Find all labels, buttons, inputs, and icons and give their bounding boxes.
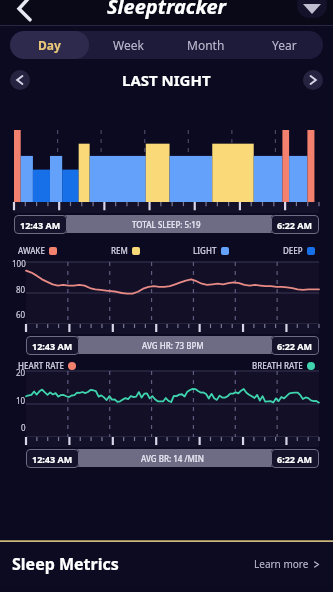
- button[interactable]: Next night: [303, 70, 323, 90]
- staticText: DEEP: [283, 245, 303, 256]
- staticText: BREATH RATE: [252, 360, 303, 371]
- staticText: 12:43 AM: [20, 219, 61, 231]
- staticText: LIGHT: [193, 245, 217, 256]
- staticText: 80: [16, 284, 26, 295]
- staticText: 12:43 AM: [32, 340, 73, 352]
- staticText: Sleeptracker: [107, 0, 227, 19]
- staticText: AWAKE: [18, 245, 45, 256]
- staticText: Year: [272, 37, 297, 53]
- staticText: 60: [16, 309, 26, 320]
- button[interactable]: Year: [245, 31, 323, 59]
- staticText: AVG BR: 14 /MIN: [141, 453, 204, 464]
- staticText: 0: [21, 422, 26, 433]
- staticText: 20: [16, 367, 26, 378]
- staticText: 6:22 AM: [277, 453, 313, 465]
- staticText: 6:22 AM: [277, 340, 313, 352]
- staticText: Learn more: [254, 557, 309, 571]
- staticText: Sleep Metrics: [12, 553, 119, 575]
- staticText: Month: [187, 37, 225, 53]
- button[interactable]: Month: [167, 31, 245, 59]
- button[interactable]: Previous night: [10, 70, 30, 90]
- staticText: 100: [12, 258, 26, 269]
- button[interactable]: Menu: [297, 0, 327, 18]
- staticText: Day: [38, 37, 61, 53]
- button[interactable]: Back: [6, 0, 40, 26]
- staticText: TOTAL SLEEP: 5:19: [132, 219, 201, 230]
- staticText: REM: [111, 245, 128, 256]
- staticText: 12:43 AM: [32, 453, 73, 465]
- staticText: AVG HR: 73 BPM: [142, 340, 204, 351]
- button[interactable]: Day: [10, 31, 89, 59]
- staticText: LAST NIGHT: [122, 70, 211, 90]
- button[interactable]: Week: [89, 31, 167, 59]
- staticText: 10: [16, 395, 26, 406]
- staticText: Week: [113, 37, 144, 53]
- staticText: 6:22 AM: [277, 219, 313, 231]
- staticText: HEART RATE: [18, 360, 64, 371]
- button[interactable]: Sleep Metrics: [0, 542, 333, 586]
